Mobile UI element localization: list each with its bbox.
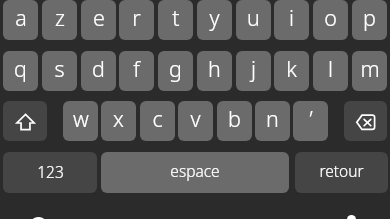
other: Shift [15,112,36,132]
button[interactable]: j [236,51,271,91]
button[interactable]: g [158,51,193,91]
button[interactable]: Shift [3,101,47,141]
button[interactable]: o [313,0,348,40]
staticText: k [286,54,297,83]
staticText: o [324,3,337,32]
button[interactable]: w [63,101,98,141]
button[interactable]: s [42,51,77,91]
button[interactable]: p [352,0,387,40]
button[interactable]: e [81,0,116,40]
staticText: z [55,3,65,32]
button[interactable]: u [236,0,271,40]
staticText: b [228,104,241,133]
button[interactable]: k [274,51,309,91]
staticText: p [363,3,376,32]
staticText: r [132,3,141,32]
staticText: e [93,3,105,32]
button[interactable]: espace [101,152,289,193]
staticText: g [169,54,182,83]
button[interactable]: c [140,101,175,141]
staticText: f [133,54,140,83]
staticText: l [328,54,333,83]
button[interactable]: y [197,0,232,40]
staticText: espace [170,160,220,181]
button[interactable]: z [42,0,77,40]
staticText: w [73,104,89,133]
button[interactable]: i [274,0,309,40]
staticText: j [251,54,256,83]
staticText: a [15,3,27,32]
staticText: d [92,54,105,83]
button[interactable]: x [101,101,136,141]
staticText: m [360,54,380,83]
button[interactable]: 123 [3,152,97,193]
other: Backspace [355,113,377,132]
button[interactable]: ’ [293,101,328,141]
staticText: c [152,104,163,133]
button[interactable]: n [255,101,290,141]
staticText: y [209,3,220,32]
button[interactable]: retour [295,152,388,193]
button[interactable]: f [119,51,154,91]
button[interactable]: Backspace [344,101,387,141]
button[interactable]: b [217,101,252,141]
staticText: s [54,54,65,83]
button[interactable]: v [178,101,213,141]
button[interactable]: l [313,51,348,91]
button[interactable]: t [158,0,193,40]
staticText: ’ [309,104,313,133]
staticText: retour [319,160,364,181]
button[interactable]: d [81,51,116,91]
staticText: n [266,104,279,133]
button[interactable]: a [3,0,38,40]
staticText: i [289,3,294,32]
staticText: v [190,104,201,133]
staticText: x [113,104,124,133]
staticText: q [14,54,27,83]
button[interactable]: r [119,0,154,40]
button[interactable]: h [197,51,232,91]
staticText: 123 [37,161,64,182]
button[interactable]: q [3,51,38,91]
staticText: h [208,54,221,83]
staticText: t [172,3,180,32]
button[interactable]: m [352,51,387,91]
staticText: u [247,3,260,32]
